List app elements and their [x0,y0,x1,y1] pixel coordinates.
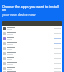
button[interactable]: Action [2,56,62,61]
button[interactable]: Action [2,71,62,72]
button[interactable]: Action [2,66,62,71]
button[interactable]: Action [2,31,62,36]
button[interactable]: Action [2,41,62,46]
button[interactable]: Action [2,36,62,41]
button[interactable]: Action [2,26,62,31]
staticText: your new device now [2,12,36,17]
button[interactable]: Action [2,51,62,56]
button[interactable]: Action [2,46,62,51]
staticText: Choose the apps you want to install on [2,4,61,12]
button[interactable]: Action [2,61,62,66]
